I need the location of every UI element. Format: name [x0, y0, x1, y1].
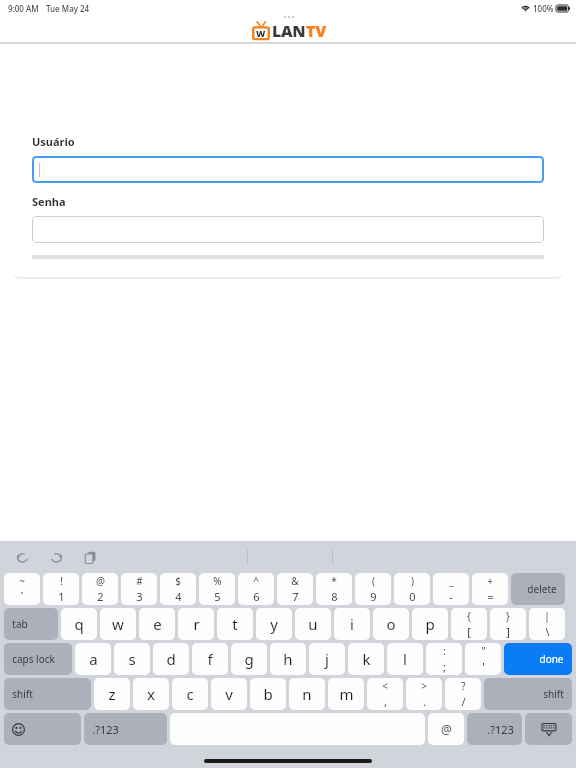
staticText: \: [545, 624, 550, 639]
button[interactable]: k: [348, 643, 384, 675]
button[interactable]: a: [75, 643, 111, 675]
staticText: 3: [136, 589, 143, 604]
button[interactable]: [32, 216, 544, 243]
button[interactable]: u: [295, 608, 331, 640]
button[interactable]: c: [172, 678, 208, 710]
button[interactable]: Undo: [12, 547, 32, 567]
staticText: &: [291, 574, 299, 588]
button[interactable]: i: [334, 608, 370, 640]
button[interactable]: f: [192, 643, 228, 675]
button[interactable]: Emoji: [4, 713, 81, 745]
button[interactable]: |: [529, 608, 565, 640]
staticText: i: [350, 614, 354, 634]
button[interactable]: .?123: [84, 713, 167, 745]
staticText: 7: [292, 589, 299, 604]
staticText: j: [325, 649, 329, 669]
staticText: Tue May 24: [46, 3, 90, 14]
staticText: u: [308, 614, 318, 634]
button[interactable]: ?: [445, 678, 481, 710]
button[interactable]: n: [289, 678, 325, 710]
button[interactable]: v: [211, 678, 247, 710]
button[interactable]: &: [277, 573, 313, 605]
staticText: ): [411, 574, 414, 588]
staticText: Senha: [32, 194, 66, 209]
button[interactable]: #: [121, 573, 157, 605]
button[interactable]: *: [316, 573, 352, 605]
button[interactable]: p: [412, 608, 448, 640]
button[interactable]: @: [82, 573, 118, 605]
staticText: ': [482, 659, 485, 674]
button[interactable]: $: [160, 573, 196, 605]
button[interactable]: r: [178, 608, 214, 640]
staticText: *: [331, 574, 337, 588]
button[interactable]: [32, 156, 544, 183]
staticText: y: [270, 614, 278, 634]
staticText: 8: [331, 589, 338, 604]
button[interactable]: x: [133, 678, 169, 710]
staticText: (: [372, 574, 375, 588]
staticText: 1: [58, 589, 65, 604]
button[interactable]: l: [387, 643, 423, 675]
button[interactable]: ^: [238, 573, 274, 605]
button[interactable]: d: [153, 643, 189, 675]
staticText: |: [544, 609, 550, 623]
button[interactable]: .?123: [467, 713, 522, 745]
staticText: +: [487, 574, 493, 588]
button[interactable]: {: [451, 608, 487, 640]
button[interactable]: o: [373, 608, 409, 640]
button[interactable]: :: [426, 643, 462, 675]
staticText: ^: [253, 574, 259, 588]
button[interactable]: delete: [511, 573, 565, 605]
staticText: e: [153, 614, 162, 634]
button[interactable]: done: [504, 643, 572, 675]
button[interactable]: }: [490, 608, 526, 640]
button[interactable]: e: [139, 608, 175, 640]
staticText: 9: [370, 589, 377, 604]
button[interactable]: tab: [4, 608, 58, 640]
button[interactable]: shift: [484, 678, 572, 710]
button[interactable]: b: [250, 678, 286, 710]
button[interactable]: Paste: [80, 547, 100, 567]
button[interactable]: t: [217, 608, 253, 640]
staticText: 2: [97, 589, 104, 604]
button[interactable]: caps lock: [4, 643, 72, 675]
staticText: d: [166, 649, 176, 669]
button[interactable]: h: [270, 643, 306, 675]
button[interactable]: (: [355, 573, 391, 605]
button[interactable]: !: [43, 573, 79, 605]
button[interactable]: >: [406, 678, 442, 710]
staticText: -: [449, 589, 453, 604]
staticText: :: [443, 644, 446, 658]
staticText: <: [382, 679, 388, 693]
button[interactable]: q: [61, 608, 97, 640]
staticText: .?123: [92, 722, 119, 737]
staticText: ]: [506, 624, 510, 639]
button[interactable]: m: [328, 678, 364, 710]
staticText: delete: [527, 582, 557, 596]
button[interactable]: ~: [4, 573, 40, 605]
button[interactable]: <: [367, 678, 403, 710]
button[interactable]: Hide keyboard: [525, 713, 572, 745]
staticText: .: [423, 694, 426, 709]
button[interactable]: ": [465, 643, 501, 675]
staticText: 100%: [533, 3, 554, 14]
button[interactable]: ): [394, 573, 430, 605]
button[interactable]: y: [256, 608, 292, 640]
button[interactable]: Redo: [46, 547, 66, 567]
button[interactable]: +: [472, 573, 508, 605]
button[interactable]: @: [428, 713, 464, 745]
staticText: ": [481, 644, 486, 658]
staticText: done: [539, 652, 564, 666]
button[interactable]: %: [199, 573, 235, 605]
button[interactable]: _: [433, 573, 469, 605]
button[interactable]: s: [114, 643, 150, 675]
button[interactable]: w: [100, 608, 136, 640]
staticText: x: [147, 684, 155, 704]
button[interactable]: j: [309, 643, 345, 675]
staticText: ;: [443, 659, 446, 674]
button[interactable]: shift: [4, 678, 91, 710]
button[interactable]: g: [231, 643, 267, 675]
button[interactable]: z: [94, 678, 130, 710]
